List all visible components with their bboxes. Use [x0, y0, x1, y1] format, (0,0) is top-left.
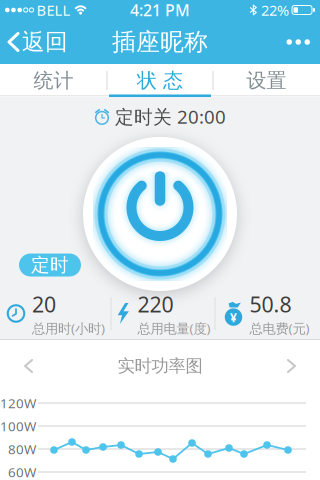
- staticText: 100W: [0, 417, 36, 435]
- button[interactable]: 定时: [19, 253, 81, 276]
- staticText: 定时: [31, 253, 69, 276]
- staticText: 总用电量(度): [137, 319, 210, 337]
- staticText: 4:21 PM: [130, 0, 190, 21]
- staticText: 22%: [261, 0, 289, 20]
- staticText: 定时关 20:00: [115, 104, 226, 129]
- staticText: 实时功率图: [117, 355, 202, 377]
- staticText: 总电费(元): [249, 319, 309, 337]
- button[interactable]: 下一页: [287, 359, 320, 373]
- staticText: 80W: [8, 440, 36, 458]
- button[interactable]: 上一页: [0, 359, 33, 373]
- staticText: 插座昵称: [112, 27, 208, 57]
- button[interactable]: 更多: [286, 39, 320, 45]
- staticText: ¥: [230, 309, 237, 325]
- staticText: 220: [137, 290, 173, 318]
- staticText: 60W: [8, 463, 36, 480]
- staticText: 50.8: [249, 290, 291, 318]
- button[interactable]: 设置: [213, 64, 319, 97]
- staticText: 120W: [0, 394, 36, 412]
- staticText: 总用时(小时): [32, 319, 105, 337]
- button[interactable]: 返回: [0, 28, 68, 56]
- staticText: 状 态: [137, 68, 183, 93]
- staticText: BELL: [37, 0, 71, 20]
- staticText: 20: [32, 290, 56, 318]
- button[interactable]: 状 态: [107, 64, 212, 97]
- staticText: 设置: [246, 68, 286, 93]
- button[interactable]: 统计: [0, 64, 106, 97]
- staticText: 返回: [22, 28, 68, 56]
- staticText: 统计: [33, 68, 73, 93]
- button[interactable]: 电源开关: [80, 134, 240, 294]
